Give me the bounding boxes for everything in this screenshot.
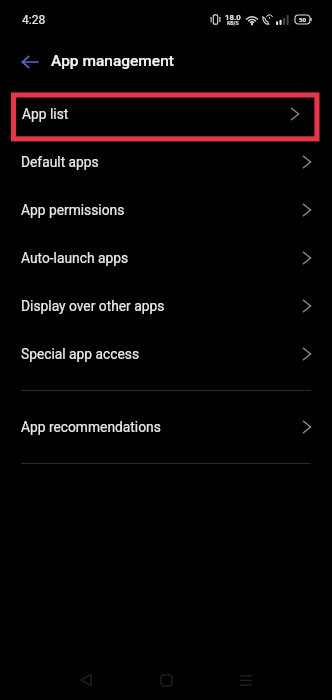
staticText: App list (22, 106, 69, 122)
staticText: Auto-launch apps (21, 250, 129, 266)
staticText: Special app access (21, 346, 140, 362)
button[interactable]: App list (11, 90, 320, 138)
button[interactable]: Default apps (0, 138, 332, 186)
button[interactable]: Display over other apps (0, 282, 332, 330)
staticText: 18.0 (225, 13, 241, 22)
button[interactable]: Home (150, 664, 182, 696)
button[interactable]: Back (13, 45, 46, 78)
button[interactable]: App permissions (0, 186, 332, 234)
button[interactable]: Back (70, 664, 102, 696)
button[interactable]: Recent apps (230, 664, 262, 696)
staticText: App management (51, 52, 174, 70)
button[interactable]: Auto-launch apps (0, 234, 332, 282)
staticText: App permissions (21, 202, 125, 218)
staticText: KB/S (227, 20, 239, 26)
button[interactable]: Special app access (0, 330, 332, 378)
button[interactable]: App recommendations (0, 403, 332, 451)
staticText: Display over other apps (21, 298, 165, 314)
staticText: 50 (299, 16, 306, 23)
staticText: 4:28 (22, 13, 46, 27)
staticText: Default apps (21, 154, 99, 170)
staticText: App recommendations (21, 419, 161, 435)
